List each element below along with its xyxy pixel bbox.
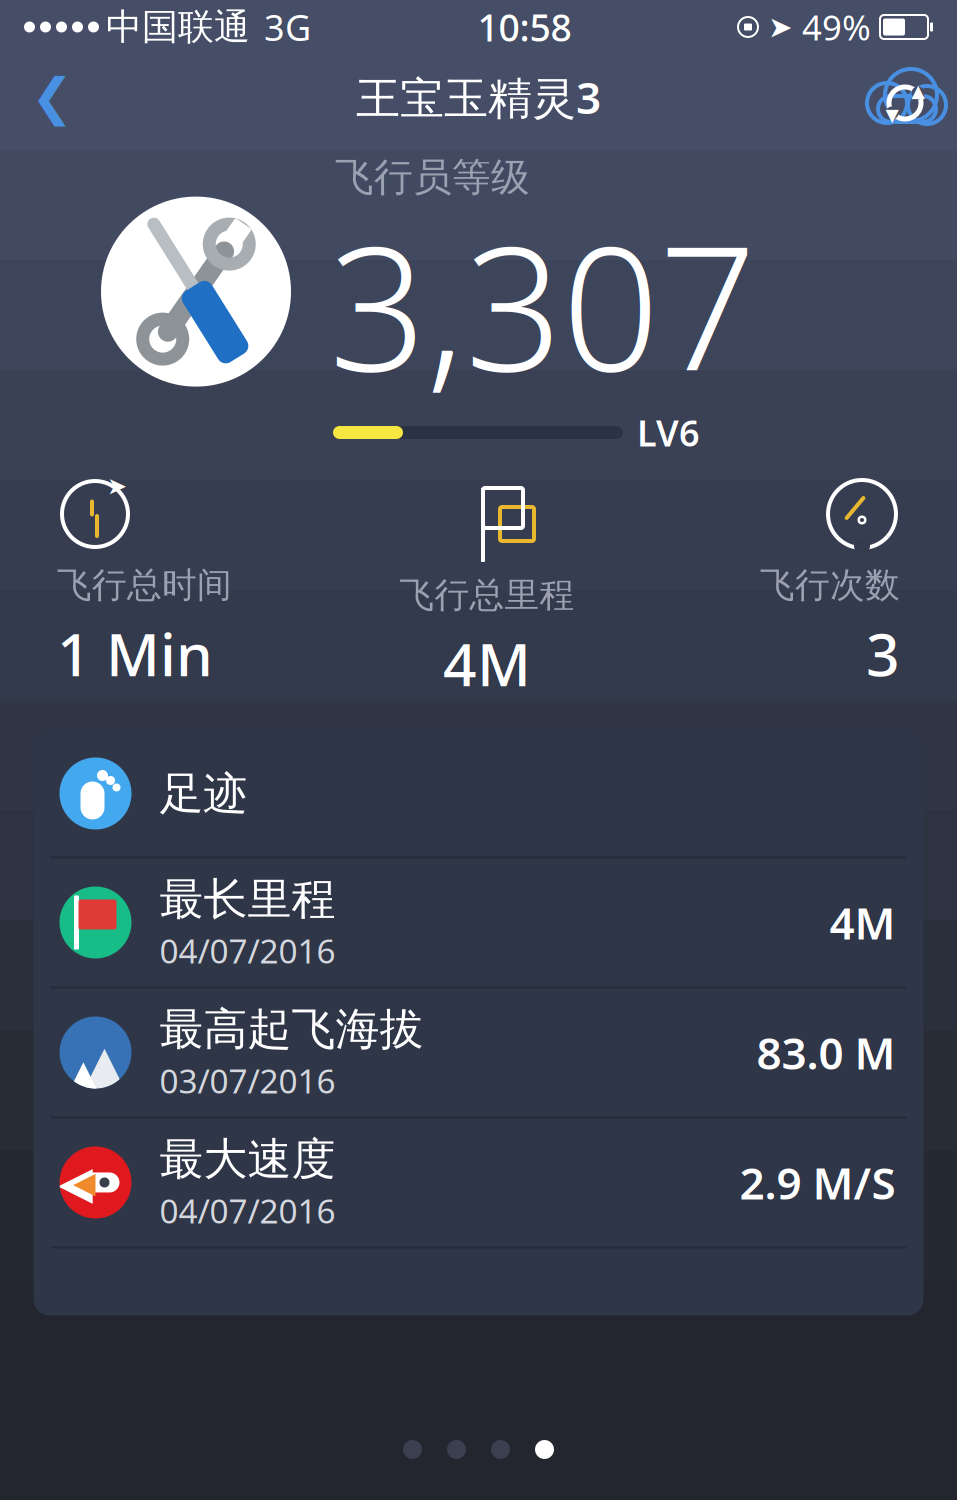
staticText: ▲ — [84, 1034, 125, 1095]
staticText: 最长里程 — [159, 872, 335, 926]
button[interactable]: 足迹 — [33, 730, 923, 856]
button[interactable]: Sync — [867, 59, 943, 135]
staticText: 中国联通 — [106, 5, 250, 49]
staticText: 3 — [866, 615, 900, 692]
staticText: 飞行总时间 — [57, 564, 232, 607]
staticText: 49% — [802, 4, 871, 50]
staticText: 飞行总里程 — [399, 574, 574, 617]
staticText: 3,307 — [329, 191, 756, 418]
staticText: 最大速度 — [159, 1132, 335, 1186]
staticText: 3G — [264, 3, 311, 51]
button[interactable]: ▲ — [33, 988, 923, 1116]
staticText: ◀ — [58, 1157, 93, 1208]
staticText: LV6 — [637, 409, 700, 456]
staticText: 飞行员等级 — [335, 154, 530, 201]
staticText: 足迹 — [159, 766, 247, 820]
staticText: ◀ — [73, 1166, 96, 1199]
staticText: 飞行次数 — [760, 564, 900, 607]
staticText: 04/07/2016 — [159, 1188, 335, 1233]
staticText: 83.0 M — [756, 1023, 895, 1082]
staticText: ▲ — [68, 1051, 99, 1097]
staticText: 10:58 — [477, 2, 571, 52]
staticText: 王宝玉精灵3 — [356, 68, 601, 126]
staticText: 03/07/2016 — [159, 1058, 335, 1103]
staticText: 4M — [443, 625, 531, 702]
button[interactable]: Back — [14, 59, 90, 135]
staticText: ➤ — [768, 10, 793, 44]
button[interactable]: 最长里程 — [33, 858, 923, 986]
staticText: 1 Min — [57, 615, 213, 692]
staticText: 最高起飞海拔 — [159, 1002, 423, 1056]
staticText: 04/07/2016 — [159, 928, 335, 973]
staticText: ❮ — [31, 68, 73, 126]
staticText: 4M — [829, 893, 895, 952]
button[interactable]: ◀ — [33, 1118, 923, 1246]
staticText: ▲ — [911, 81, 924, 101]
staticText: ▼ — [885, 105, 898, 125]
staticText: ➤ — [107, 472, 127, 500]
staticText: 2.9 M/S — [739, 1153, 895, 1212]
